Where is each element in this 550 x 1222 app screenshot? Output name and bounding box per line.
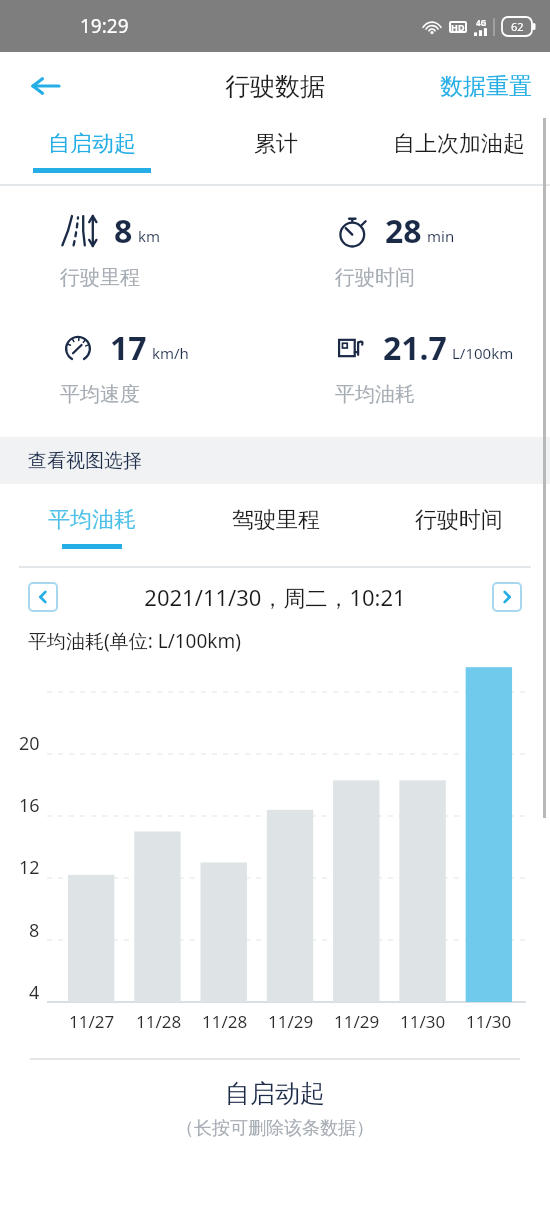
staticText: 11/30 — [466, 1010, 512, 1033]
staticText: km — [138, 226, 161, 246]
staticText: 20 — [19, 731, 40, 756]
staticText: 驾驶里程 — [232, 506, 320, 534]
button[interactable]: 自启动起 — [0, 120, 184, 186]
staticText: 查看视图选择 — [28, 449, 142, 473]
staticText: 11/30 — [400, 1010, 446, 1033]
staticText: 数据重置 — [440, 72, 532, 101]
button[interactable]: 平均油耗 — [0, 484, 184, 568]
button[interactable]: 28 — [275, 209, 550, 290]
button[interactable]: 驾驶里程 — [184, 484, 367, 568]
staticText: 行驶里程 — [60, 265, 140, 290]
staticText: 行驶时间 — [415, 506, 503, 534]
staticText: 自启动起 — [48, 130, 136, 158]
staticText: 行驶数据 — [225, 71, 325, 102]
button[interactable]: Next — [492, 582, 522, 612]
staticText: 11/27 — [69, 1010, 115, 1033]
staticText: 累计 — [254, 130, 298, 158]
staticText: L/100km — [452, 343, 514, 363]
staticText: 8 — [114, 209, 133, 253]
button[interactable]: 21.7 — [275, 326, 550, 407]
staticText: 0 — [29, 1041, 40, 1066]
staticText: 行驶时间 — [335, 265, 415, 290]
staticText: 17 — [110, 326, 147, 370]
button[interactable]: 17 — [0, 326, 275, 407]
staticText: （长按可删除该条数据） — [0, 1117, 550, 1140]
staticText: 2021/11/30，周二，10:21 — [58, 582, 492, 612]
staticText: 28 — [385, 209, 422, 253]
button[interactable]: 8 — [0, 209, 275, 290]
staticText: 自启动起 — [0, 1078, 550, 1109]
staticText: 平均速度 — [60, 382, 140, 407]
button[interactable]: 行驶时间 — [367, 484, 550, 568]
button[interactable]: Previous — [28, 582, 58, 612]
staticText: 11/29 — [268, 1010, 314, 1033]
staticText: 平均油耗 — [48, 506, 136, 534]
staticText: HD — [451, 21, 465, 33]
staticText: 11/28 — [202, 1010, 248, 1033]
staticText: 16 — [19, 793, 40, 818]
staticText: 11/28 — [136, 1010, 182, 1033]
button[interactable]: 数据重置 — [436, 64, 536, 109]
staticText: 自上次加油起 — [393, 130, 525, 158]
staticText: 平均油耗(单位: L/100km) — [28, 628, 241, 654]
staticText: 12 — [19, 855, 40, 880]
staticText: 4G — [476, 17, 487, 28]
staticText: 19:29 — [80, 13, 129, 39]
staticText: 8 — [29, 918, 40, 943]
staticText: 62 — [511, 19, 524, 34]
staticText: 11/29 — [334, 1010, 380, 1033]
staticText: 4 — [29, 980, 40, 1005]
button[interactable]: Back — [18, 58, 74, 114]
staticText: min — [427, 226, 455, 246]
button[interactable]: 累计 — [184, 120, 367, 186]
staticText: 21.7 — [383, 326, 447, 370]
staticText: km/h — [152, 343, 189, 363]
staticText: 平均油耗 — [335, 382, 415, 407]
button[interactable]: 自上次加油起 — [367, 120, 550, 186]
